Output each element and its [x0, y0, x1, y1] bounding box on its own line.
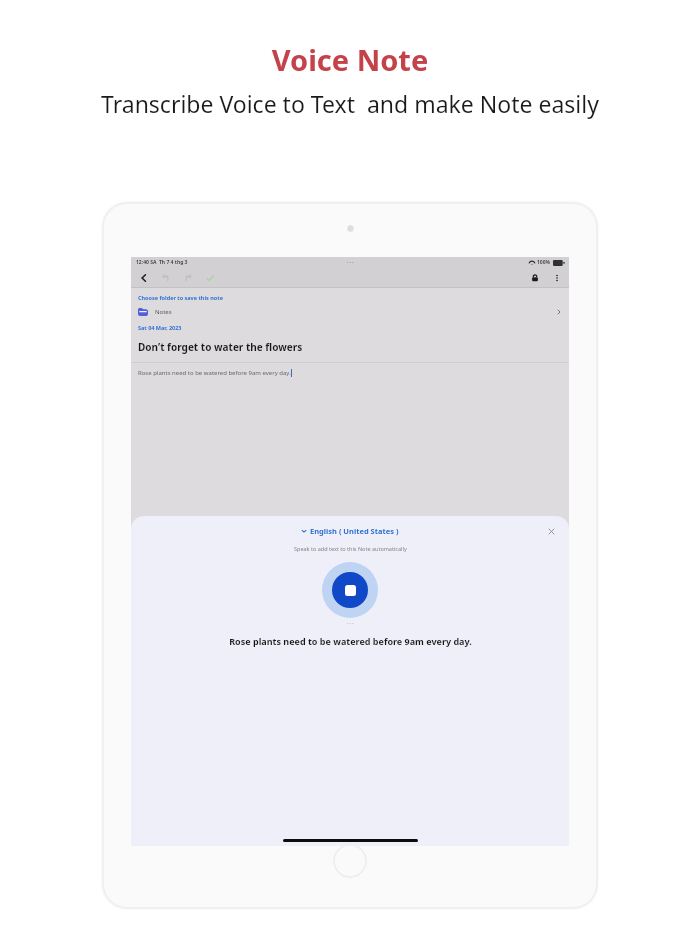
staticText: • • •: [347, 621, 354, 626]
staticText: 100%: [537, 259, 551, 266]
staticText: Voice Note: [0, 40, 700, 79]
staticText: English ( United States ): [310, 526, 399, 536]
staticText: 12:40 SA Th 7 4 thg 3: [136, 259, 188, 266]
button[interactable]: Stop recording: [322, 562, 378, 618]
button[interactable]: English ( United States ): [301, 526, 399, 536]
button[interactable]: Redo: [181, 271, 194, 284]
staticText: Notes: [155, 308, 172, 316]
button[interactable]: Notes: [131, 305, 569, 319]
button[interactable]: Save: [203, 271, 216, 284]
button[interactable]: Back: [137, 271, 150, 284]
button[interactable]: Lock: [528, 271, 541, 284]
staticText: Don’t forget to water the flowers: [138, 340, 303, 354]
staticText: • • •: [347, 260, 354, 265]
button[interactable]: More options: [550, 271, 563, 284]
staticText: Rose plants need to be watered before 9a…: [229, 635, 472, 647]
button[interactable]: Undo: [159, 271, 172, 284]
staticText: Choose folder to save this note: [138, 294, 223, 301]
staticText: Speak to add text to this Note automatic…: [294, 545, 407, 552]
staticText: Sat 04 Mar, 2023: [138, 324, 182, 331]
button[interactable]: Close: [545, 525, 557, 537]
staticText: Transcribe Voice to Text and make Note e…: [0, 88, 700, 119]
staticText: Rose plants need to be watered before 9a…: [138, 369, 291, 377]
